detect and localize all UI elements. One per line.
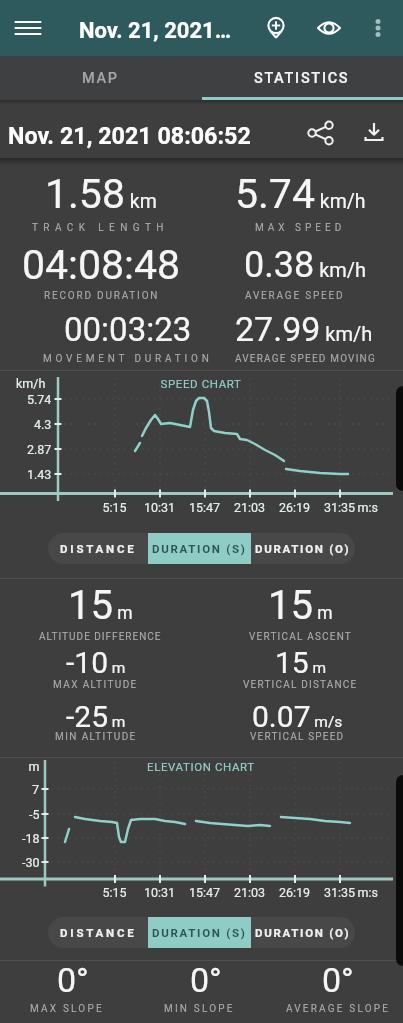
staticText: 0°	[57, 960, 89, 1000]
button[interactable]	[305, 4, 353, 52]
staticText: 15 m	[268, 582, 333, 629]
staticText: 0°	[322, 960, 354, 1000]
staticText: MAX SPEED	[255, 222, 346, 234]
staticText: TRACK LENGTH	[32, 222, 169, 234]
staticText: MIN ALTITUDE	[55, 731, 137, 743]
button[interactable]: DISTANCE	[48, 533, 148, 564]
button[interactable]: STATISTICS	[201, 56, 403, 100]
button[interactable]	[297, 109, 345, 157]
staticText: DURATION (S)	[152, 542, 247, 555]
button[interactable]: MAP	[0, 56, 201, 100]
button[interactable]	[252, 4, 300, 52]
staticText: VERTICAL DISTANCE	[243, 679, 358, 691]
button[interactable]	[350, 109, 398, 157]
staticText: 0.07 m/s	[252, 699, 343, 734]
staticText: DISTANCE	[60, 926, 137, 939]
staticText: AVERAGE SPEED	[245, 290, 345, 302]
staticText: 04:08:48	[22, 241, 181, 289]
button[interactable]: DURATION (S)	[148, 917, 251, 948]
staticText: 0°	[190, 960, 222, 1000]
staticText: 15 m	[275, 645, 327, 680]
staticText: 5.74 km/h	[235, 170, 366, 218]
staticText: DURATION (S)	[152, 926, 247, 939]
staticText: MOVEMENT DURATION	[43, 353, 213, 365]
staticText: RECORD DURATION	[44, 290, 160, 302]
staticText: 1.58 km	[45, 170, 157, 218]
staticText: -10 m	[66, 645, 126, 680]
button[interactable]	[354, 4, 402, 52]
staticText: MAP	[82, 70, 119, 87]
staticText: DURATION (O)	[255, 542, 351, 555]
staticText: ALTITUDE DIFFERENCE	[39, 631, 162, 643]
button[interactable]: DURATION (O)	[251, 533, 355, 564]
staticText: 00:03:23	[64, 310, 192, 349]
staticText: DISTANCE	[60, 542, 137, 555]
staticText: STATISTICS	[254, 70, 350, 87]
button[interactable]: DURATION (O)	[251, 917, 355, 948]
staticText: VERTICAL SPEED	[250, 731, 345, 743]
staticText: 0.38 km/h	[244, 244, 367, 286]
staticText: AVERAGE SLOPE	[286, 1003, 391, 1015]
staticText: VERTICAL ASCENT	[249, 631, 353, 643]
button[interactable]: DISTANCE	[48, 917, 148, 948]
button[interactable]	[5, 5, 51, 51]
staticText: 27.99 km/h	[235, 309, 373, 349]
staticText: Nov. 21, 2021 08:06:52	[8, 122, 251, 149]
staticText: 15 m	[68, 582, 133, 629]
staticText: MIN SLOPE	[164, 1003, 235, 1015]
staticText: DURATION (O)	[255, 926, 351, 939]
staticText: -25 m	[66, 699, 126, 734]
button[interactable]: DURATION (S)	[148, 533, 251, 564]
staticText: AVERAGE SPEED MOVING	[235, 353, 376, 365]
staticText: MAX ALTITUDE	[53, 679, 138, 691]
staticText: MAX SLOPE	[30, 1003, 104, 1015]
staticText: Nov. 21, 2021…	[79, 18, 231, 44]
